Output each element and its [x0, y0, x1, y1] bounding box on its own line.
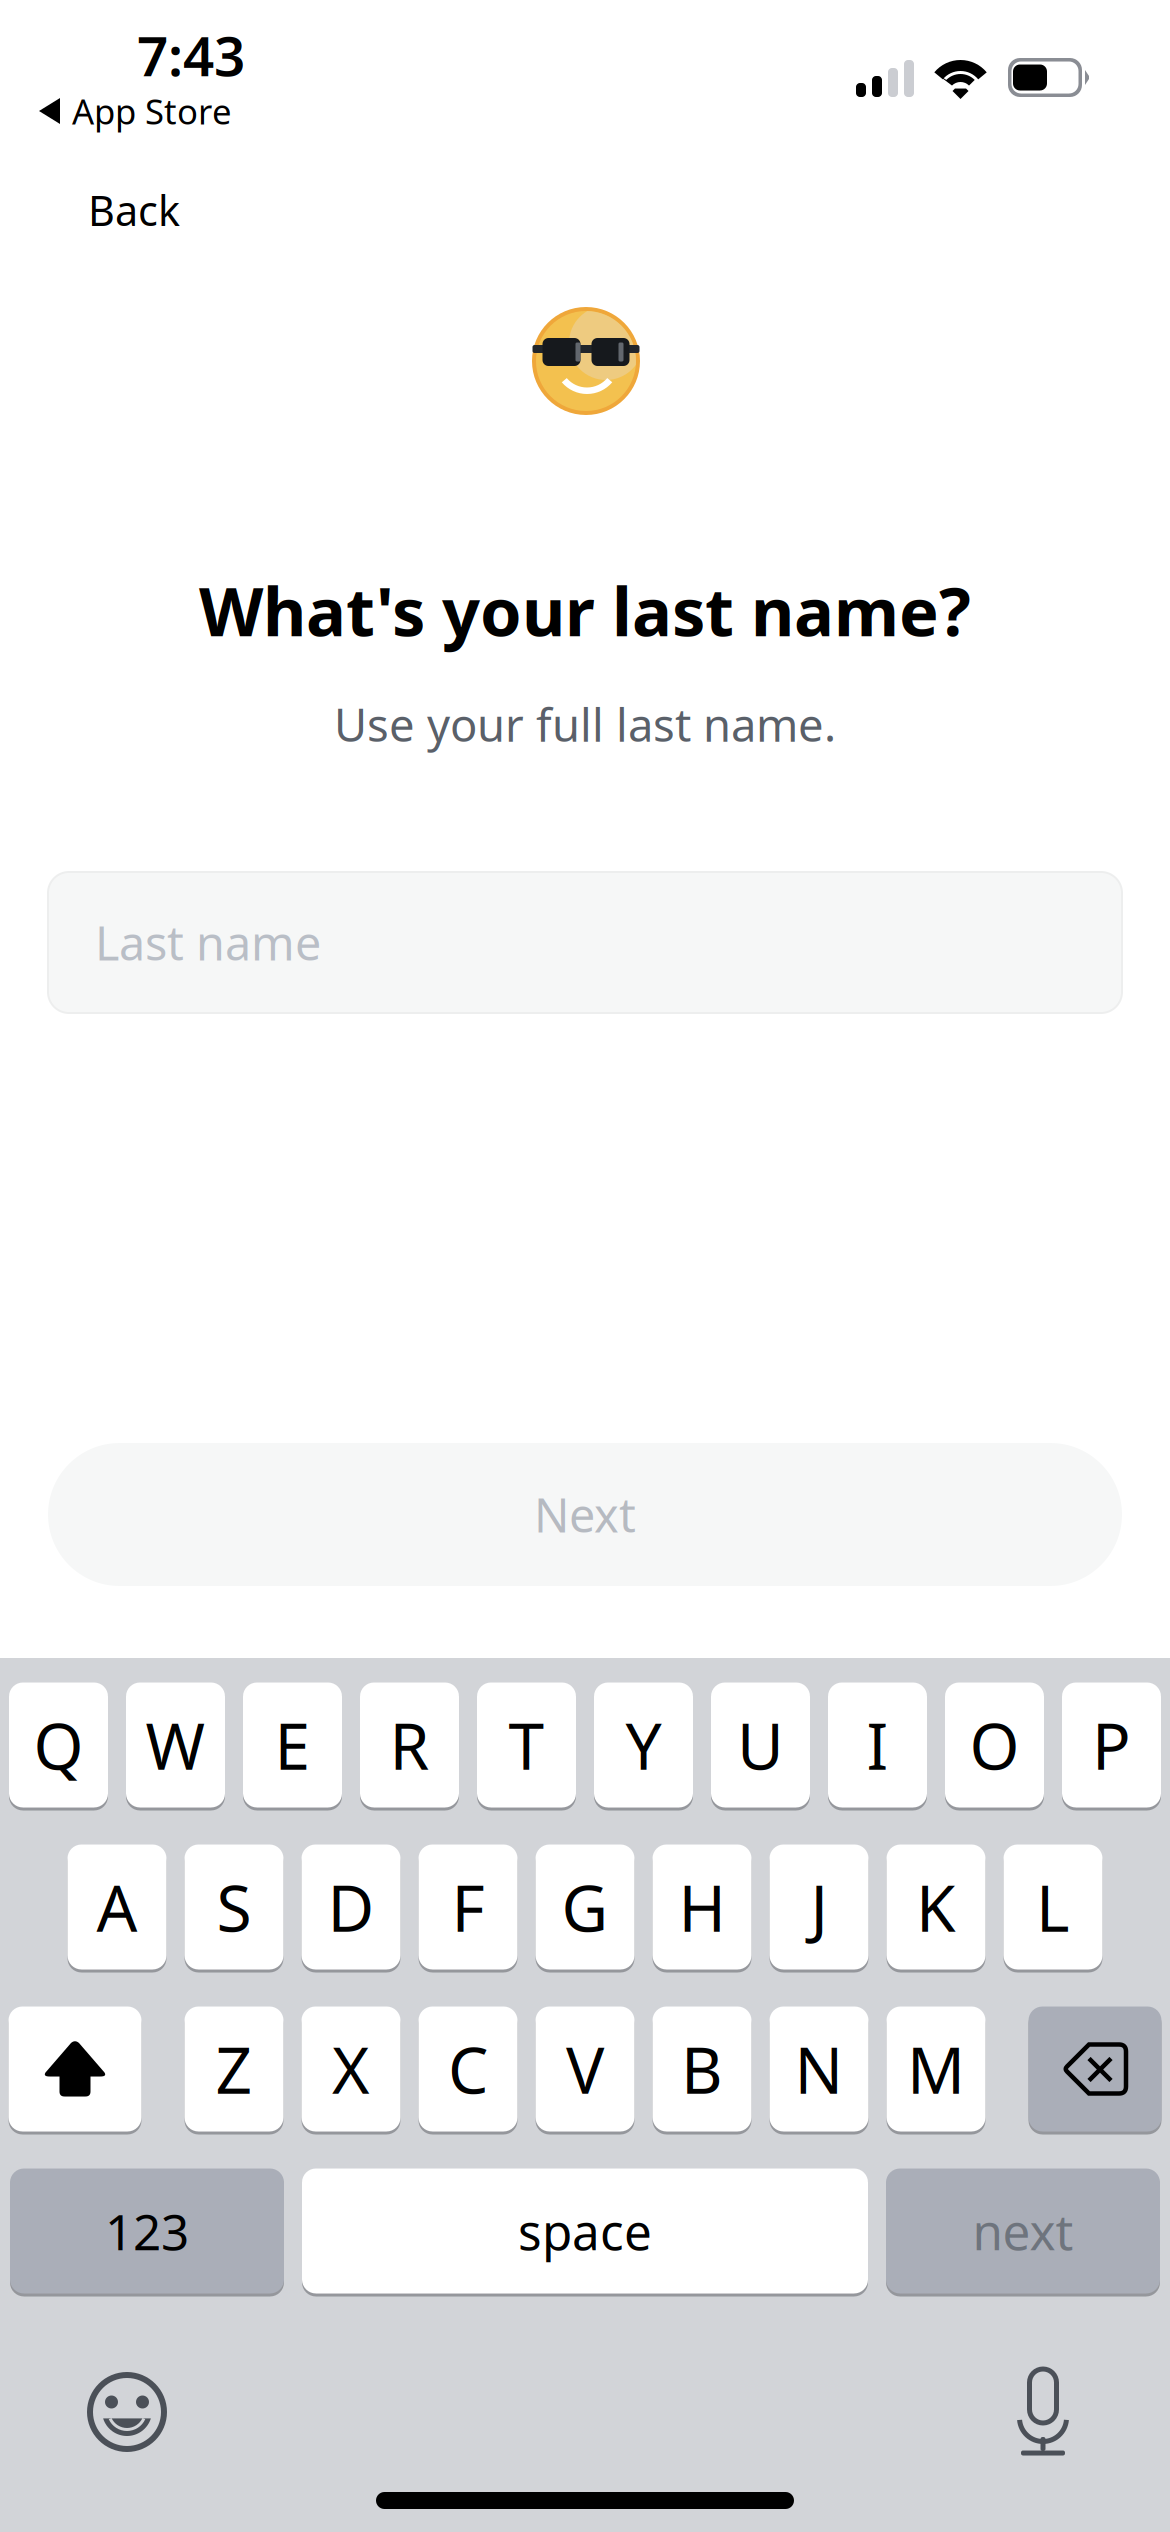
- staticText: What's your last name?: [199, 566, 971, 654]
- button[interactable]: Back: [66, 168, 202, 252]
- staticText: App Store: [72, 88, 232, 134]
- button[interactable]: A: [67, 1843, 166, 1971]
- staticText: H: [678, 1864, 725, 1949]
- button[interactable]: space: [302, 2167, 868, 2295]
- button[interactable]: Next: [48, 1443, 1122, 1586]
- button[interactable]: R: [360, 1681, 459, 1809]
- button[interactable]: N: [769, 2005, 868, 2133]
- button[interactable]: H: [652, 1843, 751, 1971]
- staticText: B: [681, 2026, 723, 2111]
- staticText: V: [566, 2026, 604, 2111]
- staticText: I: [866, 1702, 888, 1787]
- button[interactable]: Delete: [1028, 2005, 1161, 2133]
- button[interactable]: O: [945, 1681, 1044, 1809]
- staticText: C: [448, 2026, 488, 2111]
- staticText: Use your full last name.: [334, 694, 836, 754]
- staticText: S: [216, 1864, 251, 1949]
- button[interactable]: Y: [594, 1681, 693, 1809]
- staticText: O: [969, 1702, 1019, 1787]
- button[interactable]: X: [301, 2005, 400, 2133]
- staticText: G: [561, 1864, 608, 1949]
- button[interactable]: E: [243, 1681, 342, 1809]
- staticText: X: [332, 2026, 370, 2111]
- button[interactable]: I: [828, 1681, 927, 1809]
- button[interactable]: U: [711, 1681, 810, 1809]
- button[interactable]: J: [769, 1843, 868, 1971]
- button[interactable]: Last name: [48, 872, 1122, 1013]
- staticText: A: [96, 1864, 137, 1949]
- button[interactable]: Shift: [8, 2005, 141, 2133]
- staticText: T: [508, 1702, 544, 1787]
- button[interactable]: L: [1003, 1843, 1102, 1971]
- button[interactable]: K: [886, 1843, 985, 1971]
- button[interactable]: P: [1062, 1681, 1161, 1809]
- button[interactable]: 123: [10, 2167, 284, 2295]
- staticText: E: [274, 1702, 310, 1787]
- button[interactable]: Dictation: [978, 2347, 1108, 2477]
- staticText: P: [1092, 1702, 1131, 1787]
- button[interactable]: S: [184, 1843, 283, 1971]
- staticText: Back: [88, 183, 180, 237]
- button[interactable]: Q: [9, 1681, 108, 1809]
- button[interactable]: next: [886, 2167, 1160, 2295]
- button[interactable]: D: [301, 1843, 400, 1971]
- button[interactable]: W: [126, 1681, 225, 1809]
- button[interactable]: V: [535, 2005, 634, 2133]
- staticText: Y: [625, 1702, 661, 1787]
- button[interactable]: C: [418, 2005, 517, 2133]
- staticText: N: [794, 2026, 843, 2111]
- button[interactable]: M: [886, 2005, 985, 2133]
- staticText: Next: [534, 1483, 636, 1545]
- button[interactable]: B: [652, 2005, 751, 2133]
- button[interactable]: Emoji keyboard: [62, 2347, 192, 2477]
- staticText: D: [327, 1864, 374, 1949]
- staticText: Z: [215, 2026, 252, 2111]
- staticText: Last name: [95, 911, 321, 973]
- staticText: 7:43: [137, 19, 245, 91]
- staticText: space: [518, 2198, 652, 2264]
- staticText: J: [810, 1864, 827, 1949]
- staticText: R: [389, 1702, 429, 1787]
- staticText: next: [972, 2198, 1073, 2264]
- staticText: M: [907, 2026, 965, 2111]
- staticText: L: [1036, 1864, 1070, 1949]
- staticText: F: [451, 1864, 484, 1949]
- staticText: K: [916, 1864, 956, 1949]
- button[interactable]: Z: [184, 2005, 283, 2133]
- button[interactable]: F: [418, 1843, 517, 1971]
- button[interactable]: T: [477, 1681, 576, 1809]
- button[interactable]: G: [535, 1843, 634, 1971]
- staticText: U: [737, 1702, 784, 1787]
- staticText: W: [145, 1702, 205, 1787]
- button[interactable]: App Store: [0, 83, 271, 139]
- staticText: Q: [33, 1702, 83, 1787]
- staticText: 123: [105, 2198, 189, 2264]
